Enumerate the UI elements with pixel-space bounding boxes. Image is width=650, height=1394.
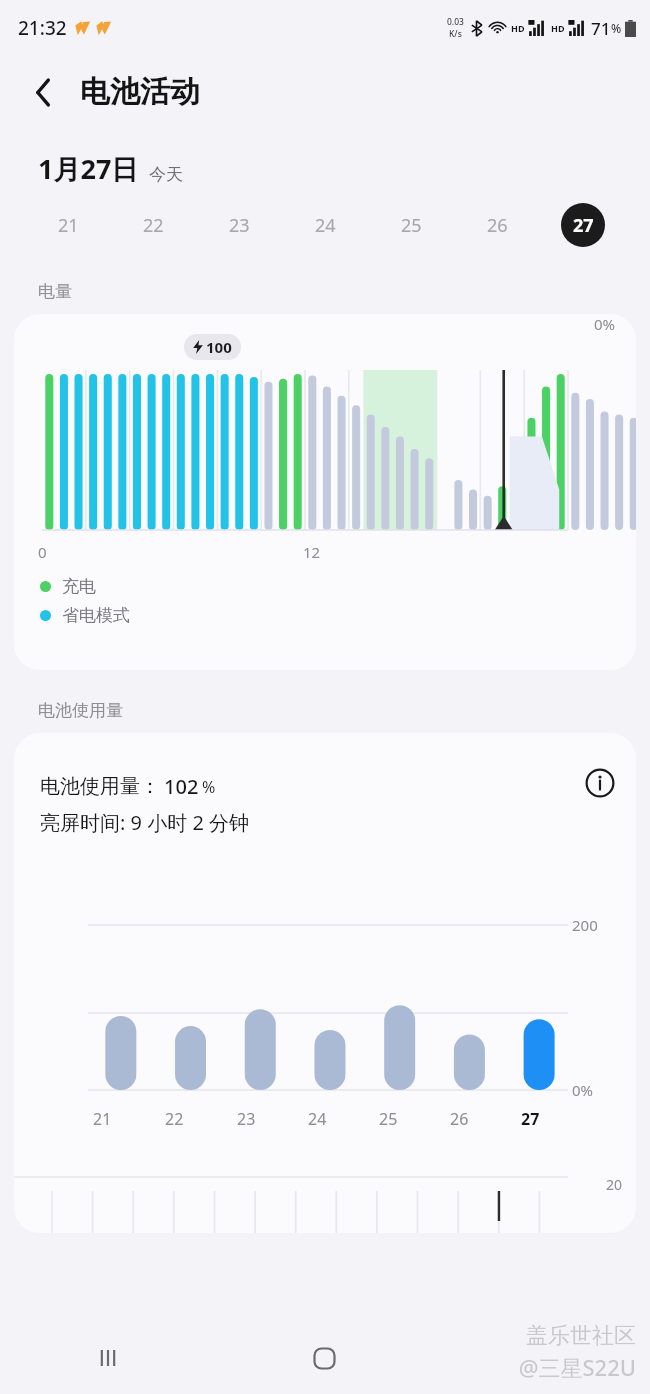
staticText: % <box>202 776 216 798</box>
staticText: 100 <box>206 337 232 357</box>
staticText: 今天 <box>149 164 183 185</box>
staticText: 22 <box>143 213 164 238</box>
staticText: 0 <box>38 542 47 562</box>
button[interactable]: 23 <box>196 193 282 257</box>
staticText: 电池使用量： <box>40 774 160 799</box>
button[interactable]: Back <box>433 1322 650 1394</box>
button[interactable]: 0% <box>14 314 636 670</box>
staticText: % <box>611 20 622 36</box>
staticText: 200 <box>572 915 598 935</box>
staticText: 0.03 <box>447 16 464 28</box>
staticText: 23 <box>237 1108 256 1130</box>
staticText: 21:32 <box>18 15 67 41</box>
button[interactable]: 21 <box>26 193 111 257</box>
staticText: 26 <box>487 213 508 238</box>
staticText: 102 <box>164 773 199 800</box>
staticText: 71 <box>591 17 611 40</box>
button[interactable]: Back <box>20 69 66 115</box>
staticText: 0% <box>572 1080 594 1100</box>
staticText: 22 <box>165 1108 184 1130</box>
staticText: 27 <box>573 213 594 238</box>
button[interactable]: 26 <box>454 193 540 257</box>
staticText: HD <box>551 22 565 34</box>
staticText: 盖乐世社区 <box>526 1322 636 1350</box>
staticText: 亮屏时间: 9 小时 2 分钟 <box>40 809 250 836</box>
staticText: 省电模式 <box>62 605 130 626</box>
staticText: 26 <box>450 1108 469 1130</box>
staticText: K/s <box>449 28 462 40</box>
staticText: 24 <box>315 213 336 238</box>
button[interactable]: Info <box>576 759 624 807</box>
staticText: 充电 <box>62 576 96 597</box>
button[interactable]: 24 <box>282 193 368 257</box>
staticText: 25 <box>379 1108 398 1130</box>
staticText: 电量 <box>38 281 72 302</box>
staticText: 1月27日 <box>38 150 139 187</box>
staticText: 20 <box>606 1175 623 1194</box>
staticText: 27 <box>521 1108 540 1130</box>
button[interactable]: 22 <box>111 193 196 257</box>
staticText: 电池使用量 <box>38 700 123 721</box>
staticText: 25 <box>401 213 422 238</box>
button[interactable]: 27 <box>540 193 626 257</box>
staticText: 12 <box>303 542 321 562</box>
button[interactable]: 25 <box>368 193 454 257</box>
staticText: @三星S22U <box>518 1352 636 1382</box>
button[interactable]: Recents <box>0 1322 216 1394</box>
staticText: 21 <box>93 1108 112 1130</box>
staticText: 24 <box>308 1108 327 1130</box>
staticText: HD <box>511 22 525 34</box>
button[interactable]: Home <box>216 1322 433 1394</box>
staticText: 0% <box>594 314 616 334</box>
staticText: 21 <box>58 213 79 238</box>
staticText: 电池活动 <box>80 73 200 111</box>
staticText: 23 <box>229 213 250 238</box>
